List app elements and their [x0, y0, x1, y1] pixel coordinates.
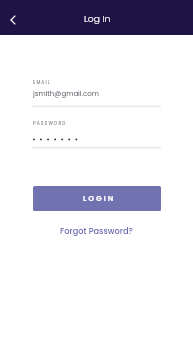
staticText: PASSWORD: [33, 120, 67, 126]
staticText: LOGIN: [83, 193, 116, 203]
button[interactable]: LOGIN: [33, 186, 161, 211]
button[interactable]: Back: [1, 8, 25, 32]
staticText: EMAIL: [33, 79, 51, 85]
staticText: Log In: [84, 12, 111, 25]
button[interactable]: Forgot Password?: [56, 223, 137, 238]
staticText: jsmith@gmail.com: [33, 89, 99, 99]
